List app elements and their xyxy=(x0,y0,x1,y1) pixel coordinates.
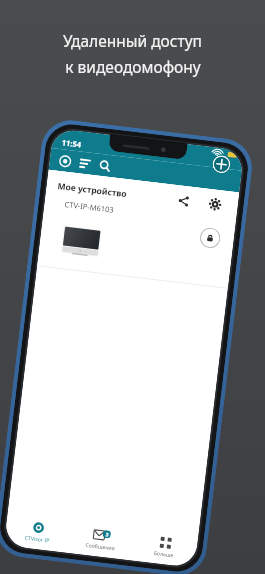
button[interactable]: Настройки xyxy=(206,195,225,214)
staticText: Удаленный доступ xyxy=(63,30,202,51)
button[interactable]: Список xyxy=(77,155,93,172)
button[interactable]: Камера xyxy=(57,153,74,170)
button[interactable]: Больше xyxy=(131,527,198,568)
button[interactable]: Поделиться xyxy=(175,192,193,210)
button[interactable]: 3 xyxy=(67,519,135,560)
button[interactable]: CTVisor IP xyxy=(4,511,71,553)
staticText: Сообщения xyxy=(85,541,116,551)
staticText: Мое устройство xyxy=(57,180,128,200)
staticText: 11:54 xyxy=(61,137,82,149)
staticText: Больше xyxy=(154,549,174,558)
staticText: 3 xyxy=(105,531,109,538)
staticText: к видеодомофону xyxy=(65,56,201,77)
button[interactable]: Добавить устройство xyxy=(211,154,231,174)
staticText: CTVisor IP xyxy=(24,534,50,543)
button[interactable]: Поиск xyxy=(97,158,113,174)
button[interactable]: Мое устройство xyxy=(37,170,239,288)
staticText: CTV-IP-M6103 xyxy=(64,199,115,215)
button[interactable]: Разблокировать xyxy=(198,226,222,250)
